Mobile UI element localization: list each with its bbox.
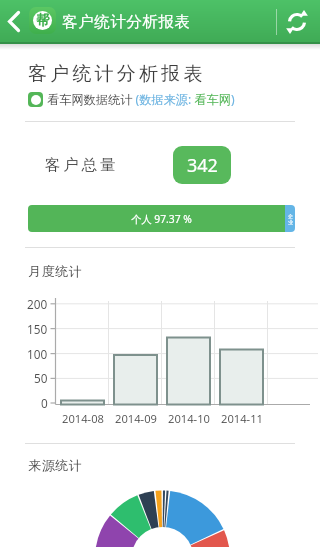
button[interactable] — [0, 0, 28, 44]
staticText: 企 — [288, 213, 293, 219]
staticText: 客户统计分析报表 — [28, 62, 206, 86]
staticText: 2014-09 — [115, 411, 157, 426]
staticText: 业 — [288, 219, 293, 225]
staticText: 个人 97.37 % — [131, 212, 192, 226]
staticText: 200 — [27, 296, 48, 312]
staticText: 客户总量 — [45, 155, 119, 175]
button[interactable]: 342 — [173, 146, 231, 184]
staticText: 0 — [41, 395, 48, 411]
staticText: 2014-08 — [62, 411, 104, 426]
staticText: 帮 — [36, 12, 50, 29]
staticText: 2014-10 — [168, 411, 210, 426]
button[interactable] — [284, 9, 310, 35]
button[interactable]: 帮 — [29, 7, 56, 34]
staticText: 50 — [34, 370, 48, 386]
staticText: 150 — [27, 321, 48, 337]
staticText: 月度统计 — [28, 263, 82, 279]
staticText: 100 — [27, 346, 48, 362]
staticText: 来源统计 — [28, 457, 82, 473]
staticText: 看车网数据统计 (数据来源: 看车网) — [47, 91, 235, 108]
staticText: 342 — [187, 153, 218, 178]
staticText: 2014-11 — [221, 411, 263, 426]
staticText: 客户统计分析报表 — [62, 12, 190, 32]
button[interactable]: 企 — [28, 205, 295, 232]
